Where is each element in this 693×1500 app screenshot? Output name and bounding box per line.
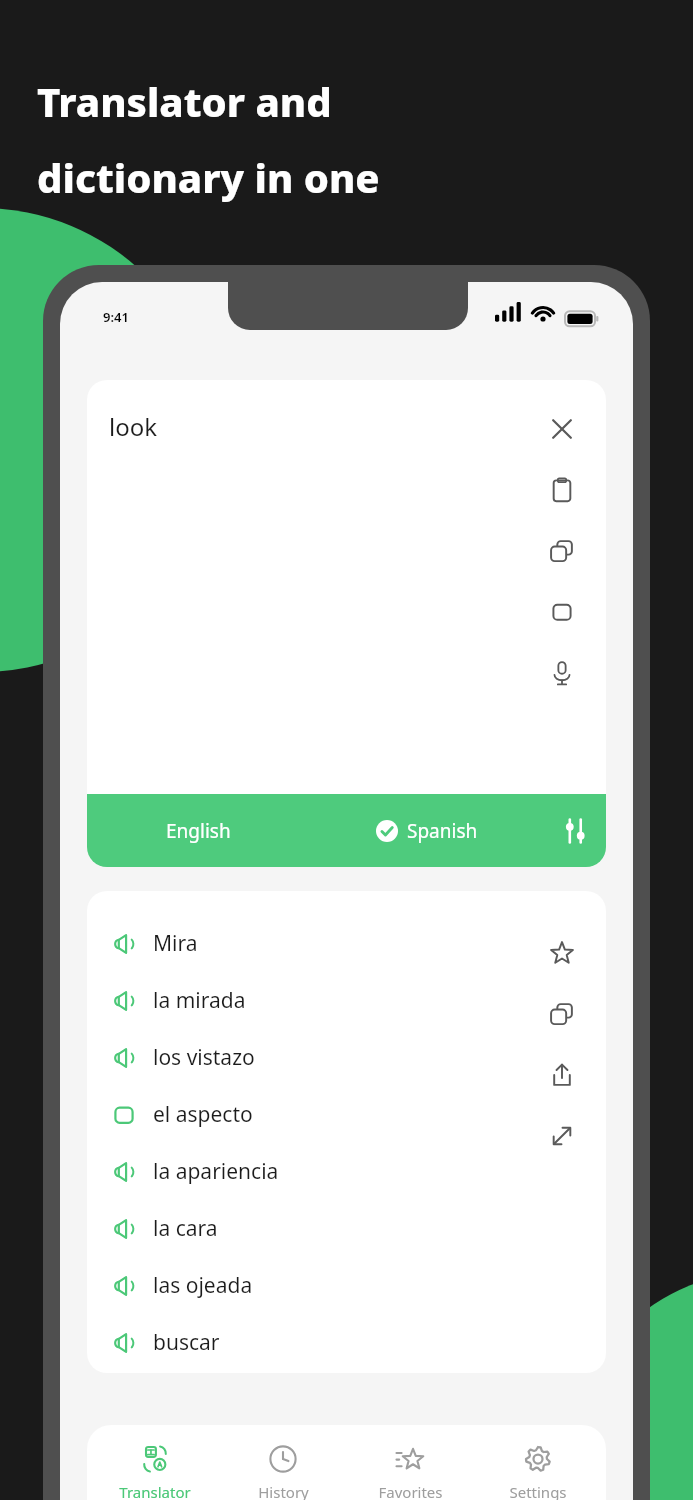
button[interactable]: History — [223, 1439, 343, 1500]
button[interactable]: Language settings — [544, 794, 606, 867]
button[interactable]: Add to favorites — [531, 922, 592, 983]
button[interactable]: la apariencia — [87, 1143, 606, 1200]
staticText: la cara — [153, 1214, 218, 1243]
staticText: English — [166, 818, 231, 844]
button[interactable]: Copy — [531, 520, 592, 581]
button[interactable]: Copy translation — [531, 983, 592, 1044]
staticText: la mirada — [153, 986, 246, 1015]
staticText: el aspecto — [153, 1100, 253, 1129]
staticText: Translator and — [37, 74, 332, 128]
button[interactable]: Settings — [478, 1439, 598, 1500]
button[interactable]: Expand — [531, 1105, 592, 1166]
button[interactable]: la mirada — [87, 972, 606, 1029]
button[interactable]: Paste — [531, 459, 592, 520]
button[interactable]: Clear — [531, 398, 592, 459]
button[interactable]: Mira — [87, 915, 606, 972]
button[interactable]: Voice input — [531, 642, 592, 703]
button[interactable]: Share — [531, 1044, 592, 1105]
button[interactable]: Favorites — [350, 1439, 470, 1500]
staticText: 9:41 — [103, 308, 129, 326]
staticText: los vistazo — [153, 1043, 255, 1072]
button[interactable]: las ojeada — [87, 1257, 606, 1314]
staticText: Translator — [119, 1482, 191, 1500]
button[interactable]: Select all — [531, 581, 592, 642]
staticText: la apariencia — [153, 1157, 279, 1186]
staticText: dictionary in one — [37, 150, 380, 204]
staticText: buscar — [153, 1328, 220, 1357]
staticText: Mira — [153, 929, 198, 958]
staticText: History — [258, 1482, 309, 1500]
button[interactable]: Translator — [95, 1439, 215, 1500]
staticText: Spanish — [407, 818, 478, 844]
button[interactable]: los vistazo — [87, 1029, 606, 1086]
staticText: look — [109, 410, 158, 443]
button[interactable]: el aspecto — [87, 1086, 606, 1143]
staticText: Settings — [509, 1482, 567, 1500]
staticText: las ojeada — [153, 1271, 253, 1300]
button[interactable]: buscar — [87, 1314, 606, 1371]
button[interactable]: la cara — [87, 1200, 606, 1257]
staticText: Favorites — [378, 1482, 443, 1500]
button[interactable]: English — [87, 794, 606, 867]
